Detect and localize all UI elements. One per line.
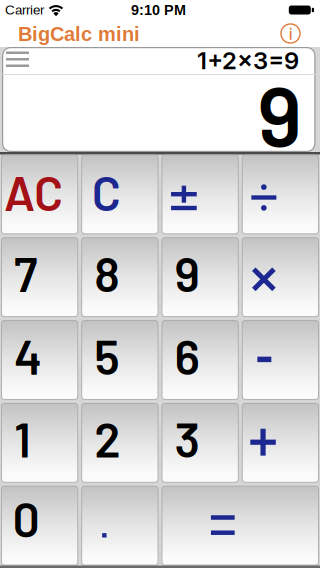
button[interactable]: Subtract [242, 320, 319, 400]
button[interactable]: 6 [161, 320, 239, 400]
staticText: i [288, 23, 292, 44]
staticText: 9 [257, 63, 301, 164]
button[interactable]: Equals [161, 486, 319, 565]
staticText: AC [4, 163, 63, 221]
staticText: 1+2×3=9 [197, 46, 299, 75]
button[interactable]: Info [270, 20, 310, 47]
button[interactable]: 1 [1, 403, 78, 483]
staticText: 8 [94, 244, 120, 301]
button[interactable]: Multiply [242, 237, 319, 317]
staticText: 1 [14, 409, 31, 467]
button[interactable]: 4 [1, 320, 78, 400]
staticText: 0 [12, 489, 39, 547]
staticText: 6 [174, 327, 199, 384]
staticText: 5 [94, 327, 119, 384]
button[interactable]: 7 [1, 237, 78, 317]
staticText: BigCalc mini [18, 23, 140, 45]
staticText: C [92, 163, 121, 221]
button[interactable]: AC [1, 154, 78, 234]
button[interactable]: 9 [161, 237, 239, 317]
button[interactable]: Divide [242, 154, 319, 234]
staticText: 4 [14, 327, 42, 384]
button[interactable]: Add [242, 403, 319, 483]
button[interactable]: 3 [161, 403, 239, 483]
staticText: 9:10 PM [131, 2, 186, 18]
staticText: 2 [94, 409, 120, 467]
staticText: 3 [174, 409, 199, 467]
button[interactable]: 0 [1, 486, 78, 565]
button[interactable]: 8 [81, 237, 158, 317]
button[interactable]: Decimal point [81, 486, 158, 565]
staticText: 9 [174, 244, 199, 301]
button[interactable]: C [81, 154, 158, 234]
staticText: Carrier [5, 3, 44, 17]
button[interactable]: 5 [81, 320, 158, 400]
staticText: 7 [14, 244, 37, 301]
button[interactable]: 2 [81, 403, 158, 483]
button[interactable]: Plus minus [161, 154, 239, 234]
button[interactable]: Menu [2, 47, 29, 67]
